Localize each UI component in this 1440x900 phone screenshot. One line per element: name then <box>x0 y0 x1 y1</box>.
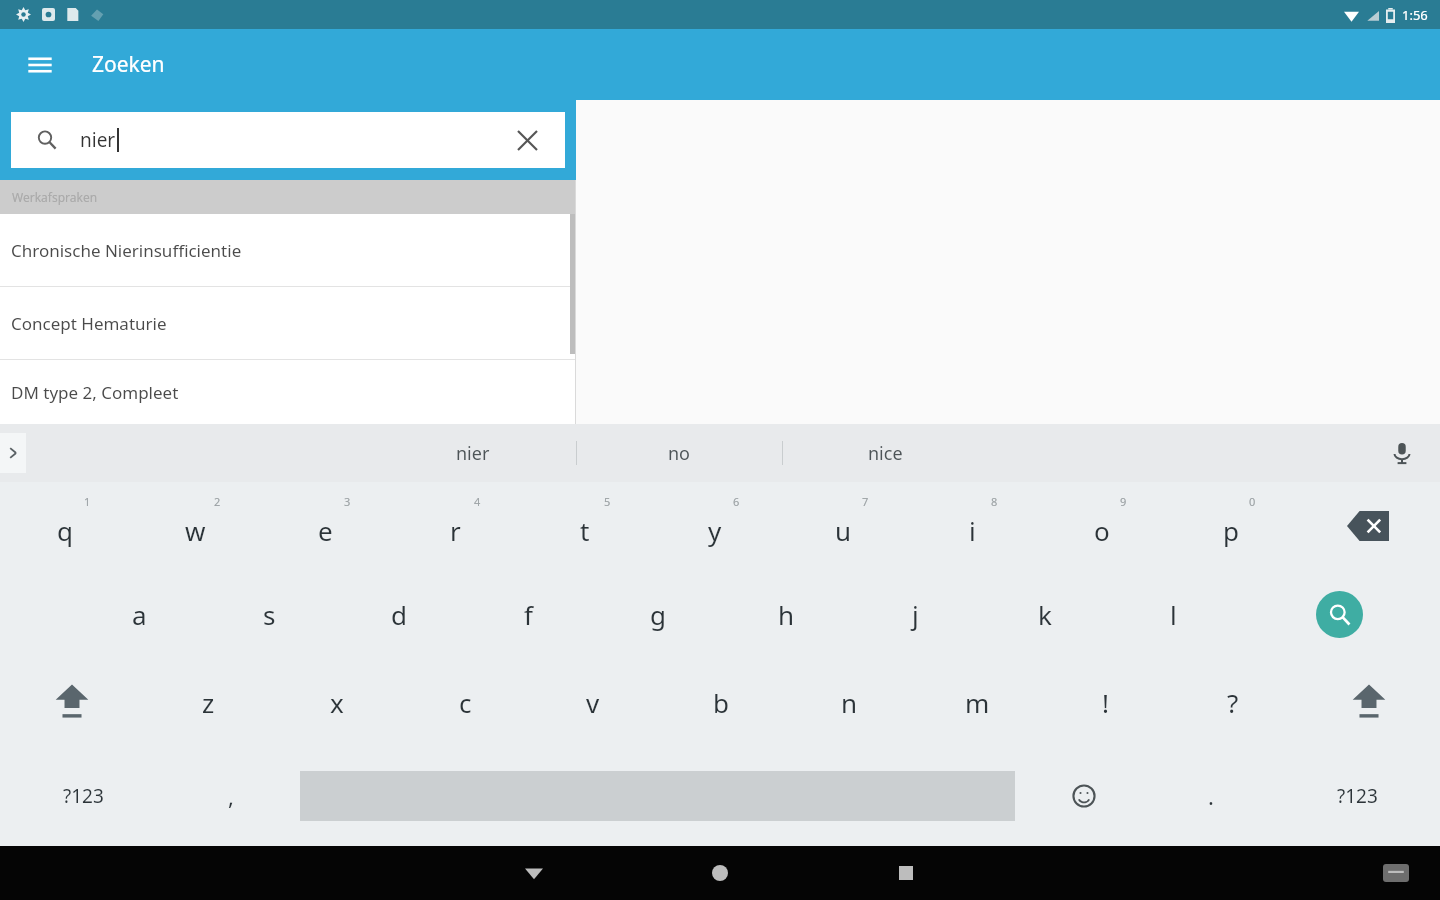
button[interactable]: 0 <box>1166 482 1295 570</box>
button[interactable]: h <box>722 570 851 658</box>
button[interactable]: v <box>529 658 657 746</box>
staticText: nier <box>80 127 116 153</box>
button[interactable]: Space <box>294 746 1020 846</box>
button[interactable]: Keyboard settings <box>1374 851 1418 895</box>
button[interactable]: ?123 <box>1274 746 1440 846</box>
button[interactable]: Clear search <box>503 116 551 164</box>
button[interactable]: f <box>464 570 593 658</box>
staticText: w <box>185 513 206 548</box>
button[interactable]: ? <box>1169 658 1297 746</box>
staticText: Concept Hematurie <box>11 312 167 335</box>
staticText: f <box>524 597 533 632</box>
staticText: b <box>713 685 729 720</box>
button[interactable]: n <box>785 658 913 746</box>
button[interactable]: k <box>980 570 1109 658</box>
button[interactable]: 2 <box>130 482 260 570</box>
staticText: y <box>708 513 722 548</box>
staticText: Zoeken <box>92 50 165 79</box>
staticText: nice <box>868 441 903 466</box>
button[interactable]: Chronische Nierinsufficientie <box>0 214 576 286</box>
button[interactable]: 6 <box>650 482 779 570</box>
button[interactable]: 3 <box>260 482 390 570</box>
button[interactable]: More suggestions <box>0 433 26 473</box>
button[interactable]: d <box>334 570 464 658</box>
staticText: 3 <box>344 494 351 509</box>
staticText: s <box>263 597 276 632</box>
button[interactable]: 4 <box>390 482 520 570</box>
staticText: 1 <box>84 494 91 509</box>
button[interactable]: s <box>204 570 334 658</box>
staticText: ? <box>1227 685 1239 720</box>
staticText: ?123 <box>63 783 104 809</box>
staticText: t <box>580 513 590 548</box>
staticText: 9 <box>1120 494 1127 509</box>
button[interactable]: Open navigation drawer <box>14 39 66 91</box>
staticText: 6 <box>733 494 740 509</box>
button[interactable]: Search <box>1238 570 1440 658</box>
staticText: ! <box>1102 685 1109 720</box>
staticText: z <box>202 685 215 720</box>
button[interactable]: 1 <box>0 482 130 570</box>
staticText: o <box>1094 513 1110 548</box>
staticText: , <box>228 781 234 811</box>
button[interactable]: z <box>144 658 273 746</box>
button[interactable]: Home <box>691 846 749 900</box>
button[interactable]: Shift <box>1297 658 1440 746</box>
staticText: p <box>1223 513 1239 548</box>
staticText: v <box>586 685 600 720</box>
button[interactable]: , <box>167 746 294 846</box>
button[interactable]: Recent apps <box>877 846 935 900</box>
button[interactable]: l <box>1109 570 1238 658</box>
staticText: 8 <box>991 494 998 509</box>
staticText: u <box>835 513 852 548</box>
button[interactable]: ! <box>1041 658 1169 746</box>
button[interactable]: x <box>273 658 401 746</box>
button[interactable]: ?123 <box>0 746 167 846</box>
button[interactable]: Shift <box>0 658 144 746</box>
staticText: . <box>1208 781 1214 811</box>
button[interactable]: Emoji <box>1020 746 1147 846</box>
staticText: 7 <box>862 494 869 509</box>
button[interactable]: Voice input <box>1380 431 1424 475</box>
button[interactable]: 7 <box>779 482 908 570</box>
staticText: q <box>57 513 73 548</box>
staticText: e <box>318 513 333 548</box>
button[interactable]: c <box>401 658 529 746</box>
button[interactable]: Hide keyboard / Back <box>505 846 563 900</box>
staticText: d <box>391 597 407 632</box>
staticText: x <box>330 685 344 720</box>
button[interactable]: Concept Hematurie <box>0 287 576 359</box>
staticText: l <box>1170 597 1177 632</box>
button[interactable]: 8 <box>908 482 1037 570</box>
staticText: 4 <box>474 494 481 509</box>
button[interactable]: nier <box>11 112 565 168</box>
button[interactable]: a <box>74 570 204 658</box>
staticText: 0 <box>1249 494 1256 509</box>
button[interactable]: nice <box>783 424 988 482</box>
button[interactable]: 5 <box>520 482 650 570</box>
staticText: DM type 2, Compleet <box>11 381 179 404</box>
staticText: 1:56 <box>1402 6 1428 24</box>
button[interactable]: no <box>577 424 782 482</box>
button[interactable]: 9 <box>1037 482 1166 570</box>
staticText: r <box>450 513 461 548</box>
button[interactable]: DM type 2, Compleet <box>0 360 576 424</box>
staticText: Chronische Nierinsufficientie <box>11 239 242 262</box>
staticText: 5 <box>604 494 611 509</box>
button[interactable]: . <box>1147 746 1274 846</box>
button[interactable]: Backspace <box>1295 482 1440 570</box>
button[interactable]: j <box>851 570 980 658</box>
staticText: a <box>132 597 147 632</box>
staticText: no <box>668 441 691 466</box>
button[interactable]: nier <box>370 424 576 482</box>
staticText: ?123 <box>1337 783 1378 809</box>
staticText: i <box>969 513 976 548</box>
button[interactable]: g <box>593 570 722 658</box>
button[interactable]: m <box>913 658 1041 746</box>
staticText: j <box>912 597 919 632</box>
staticText: Werkafspraken <box>12 189 98 205</box>
staticText: c <box>459 685 472 720</box>
button[interactable]: b <box>657 658 785 746</box>
staticText: h <box>778 597 795 632</box>
staticText: nier <box>456 441 490 466</box>
